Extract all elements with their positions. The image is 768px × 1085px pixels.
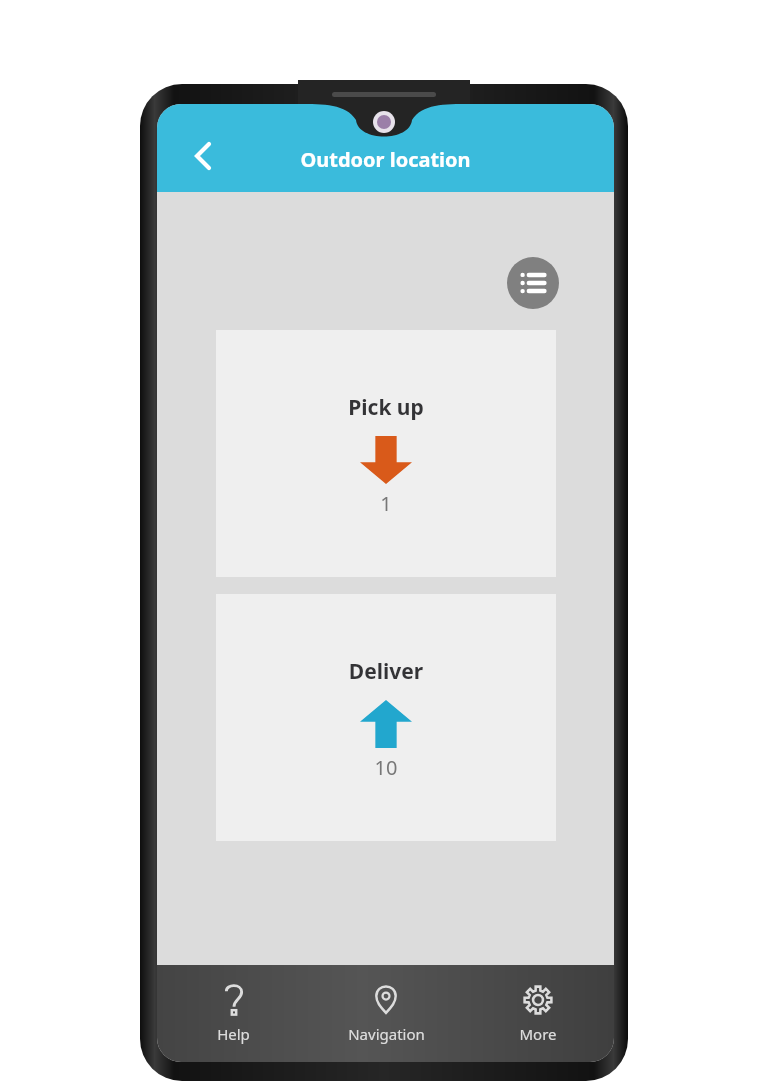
staticText: 1 [216, 490, 556, 517]
button[interactable]: Back [181, 134, 225, 178]
staticText: More [519, 1024, 557, 1044]
staticText: Pick up [216, 393, 556, 422]
button[interactable]: Deliver [216, 594, 556, 841]
button[interactable]: List view [507, 257, 559, 309]
staticText: Deliver [216, 657, 556, 686]
button[interactable]: More [462, 965, 614, 1062]
button[interactable]: Navigation [310, 965, 462, 1062]
button[interactable]: Help [157, 965, 310, 1062]
staticText: 10 [216, 754, 556, 781]
button[interactable]: Pick up [216, 330, 556, 577]
staticText: Outdoor location [157, 146, 614, 173]
staticText: Navigation [348, 1024, 425, 1044]
staticText: Help [217, 1024, 250, 1044]
